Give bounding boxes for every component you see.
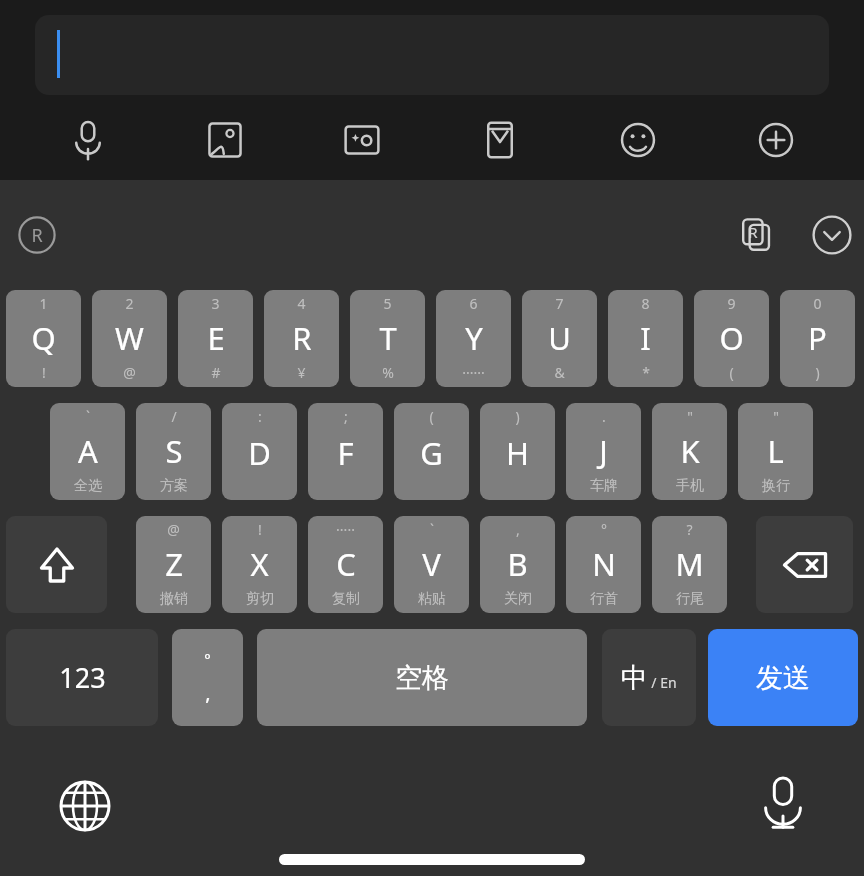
button[interactable]: 3 [178,290,253,387]
staticText: 剪切 [246,590,274,608]
staticText: : [258,407,262,426]
staticText: ` [86,407,90,426]
button[interactable]: , [480,516,555,613]
button[interactable]: ° [566,516,641,613]
staticText: ` [430,520,434,539]
staticText: G [420,432,443,474]
button[interactable]: ? [652,516,727,613]
staticText: 0 [813,294,822,313]
staticText: 行尾 [676,590,704,608]
staticText: 7 [555,294,564,313]
button[interactable]: Switch language [53,774,117,838]
button[interactable]: 7 [522,290,597,387]
staticText: V [422,543,441,585]
button[interactable]: 8 [608,290,683,387]
button[interactable]: ) [480,403,555,500]
button[interactable]: ° [172,629,243,726]
staticText: ° [204,649,211,669]
staticText: , [205,679,211,706]
button[interactable]: 2 [92,290,167,387]
button[interactable]: 发送 [708,629,858,726]
staticText: 1 [39,294,48,313]
staticText: I [640,317,651,359]
button[interactable]: " [652,403,727,500]
staticText: ) [515,407,520,426]
button[interactable]: Photos [195,110,255,170]
staticText: ( [429,407,434,426]
staticText: 8 [641,294,650,313]
button[interactable]: Shift [6,516,107,613]
staticText: D [248,432,271,474]
staticText: # [211,363,221,382]
staticText: X [250,543,269,585]
button[interactable]: Effects [332,110,392,170]
staticText: 9 [727,294,736,313]
staticText: 撤销 [160,590,188,608]
staticText: Q [31,317,56,359]
button[interactable]: : [222,403,297,500]
staticText: J [599,430,608,472]
button[interactable]: 0 [780,290,855,387]
staticText: " [773,407,779,426]
button[interactable]: 空格 [257,629,587,726]
staticText: 5 [383,294,392,313]
staticText: W [115,317,144,359]
staticText: 发送 [756,661,810,695]
staticText: 复制 [332,590,360,608]
button[interactable]: Card [470,110,530,170]
button[interactable]: Dictate [751,772,815,836]
button[interactable]: / [136,403,211,500]
button[interactable]: More [746,110,806,170]
staticText: ( [729,363,734,382]
button[interactable]: 6 [436,290,511,387]
staticText: 6 [469,294,478,313]
button[interactable]: Input scheme [15,213,59,257]
button[interactable]: 中 [602,629,696,726]
staticText: L [767,430,784,472]
button[interactable]: Voice message [58,110,118,170]
button[interactable]: 123 [6,629,158,726]
button[interactable]: ! [222,516,297,613]
staticText: 全选 [74,477,102,495]
button[interactable]: . [566,403,641,500]
staticText: / En [651,673,677,692]
button[interactable]: 1 [6,290,81,387]
button[interactable]: Emoji [608,110,668,170]
staticText: ? [686,520,693,539]
staticText: . [602,407,606,426]
button[interactable] [35,15,829,95]
staticText: 3 [211,294,220,313]
button[interactable]: ( [394,403,469,500]
button[interactable]: 4 [264,290,339,387]
staticText: 123 [59,659,106,696]
staticText: N [592,543,616,585]
staticText: K [680,430,700,472]
staticText: ······ [462,363,485,382]
button[interactable]: " [738,403,813,500]
button[interactable]: Clipboard [734,212,780,258]
button[interactable]: ; [308,403,383,500]
staticText: 车牌 [590,477,618,495]
staticText: @ [123,363,136,382]
button[interactable]: ` [50,403,125,500]
staticText: ! [42,363,46,382]
staticText: 手机 [676,477,704,495]
button[interactable]: Backspace [756,516,853,613]
staticText: B [507,543,528,585]
button[interactable]: @ [136,516,211,613]
button[interactable]: ` [394,516,469,613]
staticText: 粘贴 [418,590,446,608]
staticText: R [31,223,43,248]
staticText: ¥ [297,363,306,382]
staticText: 关闭 [504,590,532,608]
button[interactable]: 5 [350,290,425,387]
button[interactable]: Hide keyboard [809,212,855,258]
staticText: % [382,363,394,382]
staticText: ° [601,520,607,539]
staticText: 行首 [590,590,618,608]
staticText: 2 [125,294,134,313]
button[interactable]: ····· [308,516,383,613]
staticText: R [748,222,758,242]
button[interactable]: 9 [694,290,769,387]
staticText: A [78,430,98,472]
